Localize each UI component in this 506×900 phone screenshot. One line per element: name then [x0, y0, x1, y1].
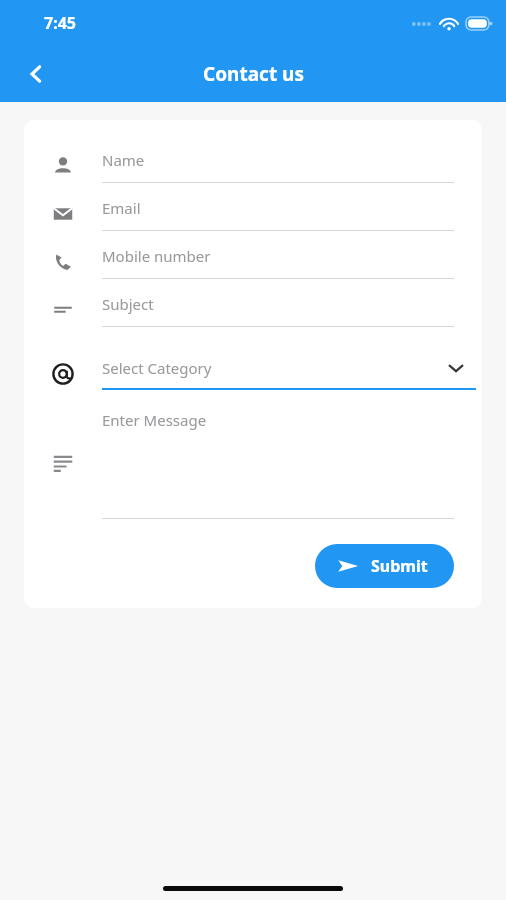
button[interactable]: Subject: [24, 286, 482, 334]
staticText: Select Category: [102, 358, 212, 378]
button[interactable]: Mobile number: [24, 238, 482, 286]
staticText: Submit: [371, 555, 428, 577]
button[interactable]: Enter Message: [24, 410, 482, 526]
staticText: Mobile number: [102, 246, 211, 266]
button[interactable]: Email: [24, 190, 482, 238]
button[interactable]: Submit: [315, 544, 454, 588]
other: Expand category: [446, 358, 466, 378]
staticText: Enter Message: [102, 410, 207, 430]
button[interactable]: Back: [16, 54, 56, 94]
button[interactable]: Name: [24, 142, 482, 190]
staticText: Subject: [102, 294, 154, 314]
staticText: Contact us: [203, 61, 304, 87]
button[interactable]: Select Category: [24, 352, 482, 396]
staticText: 7:45: [44, 12, 76, 34]
staticText: Name: [102, 150, 145, 170]
staticText: Email: [102, 198, 141, 218]
